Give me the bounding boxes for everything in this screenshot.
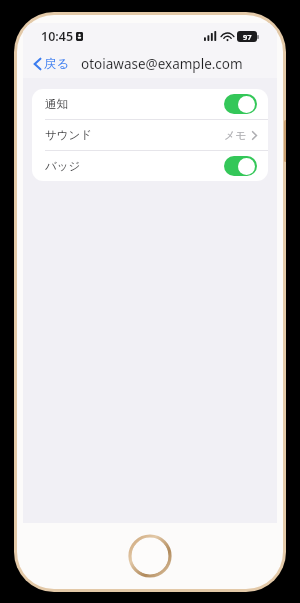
button[interactable]: バッジ	[32, 151, 268, 181]
staticText: 戻る	[44, 56, 70, 72]
staticText: 10:45	[41, 28, 74, 45]
staticText: 97	[243, 32, 252, 42]
staticText: バッジ	[45, 159, 81, 173]
button[interactable]: 通知	[32, 89, 268, 119]
staticText: サウンド	[45, 128, 93, 142]
button[interactable]: サウンド	[32, 120, 268, 150]
button[interactable]: 戻る	[31, 52, 73, 76]
button[interactable]: Toggle on	[224, 156, 257, 176]
staticText: 通知	[45, 97, 68, 111]
staticText: メモ	[224, 128, 247, 142]
staticText: otoiawase@example.com	[81, 55, 243, 73]
button[interactable]: Toggle on	[224, 94, 257, 114]
